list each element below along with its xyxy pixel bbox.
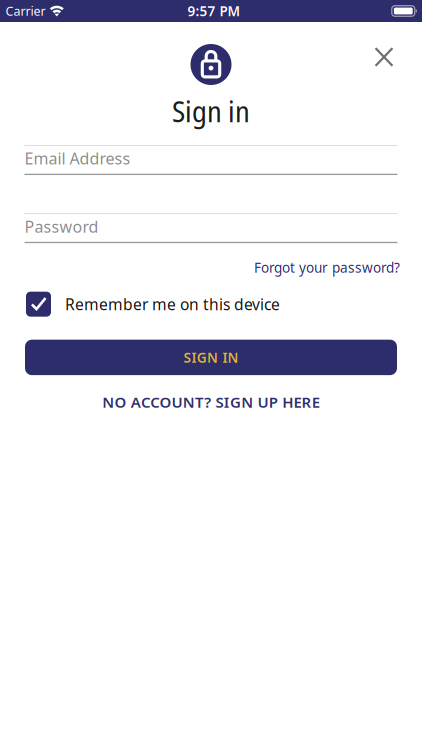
staticText: Sign in [172, 91, 250, 131]
staticText: 9:57 PM [187, 2, 240, 20]
button[interactable]: Close [366, 38, 402, 76]
button[interactable]: Forgot your password? [254, 258, 400, 277]
staticText: Forgot your password? [254, 258, 400, 277]
staticText: SIGN IN [183, 348, 239, 367]
button[interactable]: SIGN IN [0, 340, 422, 375]
staticText: Remember me on this device [65, 293, 280, 315]
staticText: Password [24, 215, 98, 237]
staticText: Email Address [24, 147, 130, 169]
button[interactable]: NO ACCOUNT? SIGN UP HERE [92, 384, 330, 420]
staticText: NO ACCOUNT? SIGN UP HERE [102, 392, 320, 412]
staticText: Carrier [5, 2, 45, 19]
button[interactable]: Remember me on this device [0, 292, 422, 317]
